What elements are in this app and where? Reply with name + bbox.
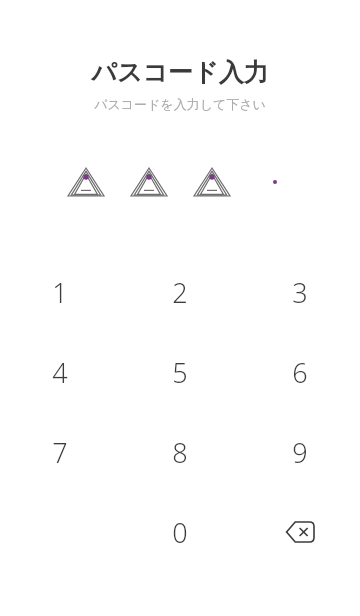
button[interactable]: 6	[240, 332, 360, 412]
button[interactable]: 0	[120, 492, 240, 572]
staticText: 5	[172, 354, 188, 391]
staticText: 8	[172, 434, 188, 471]
button[interactable]: 8	[120, 412, 240, 492]
staticText: パスコードを入力して下さい	[0, 96, 360, 112]
button[interactable]: 4	[0, 332, 120, 412]
button[interactable]: 2	[120, 252, 240, 332]
staticText: 1	[52, 274, 68, 311]
button[interactable]: 5	[120, 332, 240, 412]
staticText: 0	[172, 514, 188, 551]
staticText: 2	[172, 274, 188, 311]
button[interactable]: 9	[240, 412, 360, 492]
staticText: 3	[292, 274, 308, 311]
button[interactable]: 7	[0, 412, 120, 492]
button[interactable]: 1	[0, 252, 120, 332]
staticText: パスコード入力	[0, 57, 360, 88]
staticText: 9	[292, 434, 308, 471]
staticText: 6	[292, 354, 308, 391]
button[interactable]: Backspace	[240, 492, 360, 572]
staticText: 7	[52, 434, 68, 471]
staticText: 4	[52, 354, 68, 391]
button[interactable]: 3	[240, 252, 360, 332]
